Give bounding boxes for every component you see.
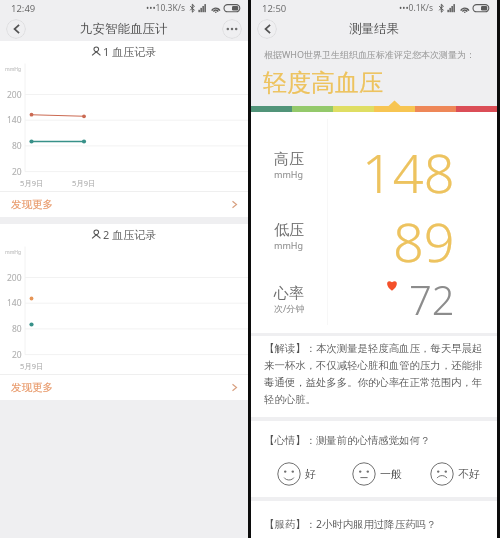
staticText: 【解读】：本次测量是轻度高血压，每天早晨起来一杯水，不仅减轻心脏和血管的压力，还…: [264, 342, 488, 406]
button[interactable]: 不好: [430, 462, 480, 486]
staticText: 5月9日: [72, 178, 96, 188]
staticText: 低压: [274, 221, 304, 240]
staticText: 次/分钟: [274, 302, 305, 314]
staticText: 轻度高血压: [263, 68, 383, 98]
staticText: 72: [409, 272, 455, 326]
staticText: 不好: [458, 467, 480, 481]
staticText: 5月9日: [20, 178, 44, 188]
staticText: 根据WHO世界卫生组织血压标准评定您本次测量为：: [264, 48, 476, 60]
staticText: 200: [7, 89, 22, 101]
staticText: 140: [7, 297, 22, 309]
staticText: 5月9日: [20, 361, 44, 371]
button[interactable]: 发现更多: [0, 375, 248, 400]
staticText: 80: [12, 323, 22, 335]
staticText: 140: [7, 114, 22, 126]
staticText: 89: [393, 204, 455, 278]
staticText: 发现更多: [11, 198, 53, 211]
staticText: 测量结果: [349, 21, 399, 37]
button[interactable]: Back: [6, 19, 26, 39]
staticText: mmHg: [5, 66, 22, 73]
staticText: 发现更多: [11, 381, 53, 394]
button[interactable]: Back: [257, 19, 277, 39]
staticText: 12:49: [11, 2, 36, 15]
staticText: 80: [12, 140, 22, 152]
staticText: 【心情】：测量前的心情感觉如何？: [264, 434, 431, 447]
staticText: 12:50: [262, 2, 287, 15]
staticText: 好: [305, 467, 316, 481]
button[interactable]: 一般: [352, 462, 402, 486]
staticText: 高压: [274, 150, 304, 169]
staticText: •••10.3K/s: [146, 2, 185, 14]
staticText: 一般: [380, 467, 402, 481]
staticText: 2 血压记录: [103, 227, 157, 242]
staticText: mmHg: [274, 239, 304, 251]
staticText: mmHg: [274, 168, 304, 180]
staticText: 20: [12, 349, 22, 361]
staticText: 200: [7, 272, 22, 284]
staticText: 1 血压记录: [103, 44, 157, 59]
button[interactable]: 好: [277, 462, 316, 486]
staticText: 20: [12, 166, 22, 178]
staticText: 【服药】：2小时内服用过降压药吗？: [264, 517, 437, 531]
staticText: 148: [362, 135, 455, 209]
staticText: 心率: [274, 284, 304, 303]
button[interactable]: More options: [222, 19, 242, 39]
staticText: 九安智能血压计: [80, 21, 168, 37]
staticText: mmHg: [5, 249, 22, 256]
staticText: •••0.1K/s: [399, 2, 434, 14]
button[interactable]: 发现更多: [0, 192, 248, 217]
